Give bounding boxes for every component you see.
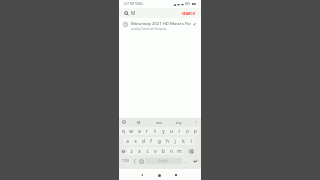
button[interactable]: English xyxy=(145,158,182,164)
staticText: x xyxy=(138,148,141,154)
button[interactable]: Motorway 2021 HD Movies Floortime... xyxy=(123,18,197,31)
button[interactable]: Back xyxy=(137,170,147,180)
button[interactable]: u xyxy=(167,127,175,135)
staticText: p xyxy=(194,128,197,134)
staticText: f xyxy=(150,138,152,144)
staticText: w xyxy=(129,128,133,134)
staticText: c xyxy=(146,148,149,154)
button[interactable]: f xyxy=(147,137,155,145)
button[interactable]: v xyxy=(151,147,159,155)
button[interactable]: k xyxy=(179,137,187,145)
button[interactable]: SEARCH xyxy=(181,10,197,17)
button[interactable]: e xyxy=(135,127,143,135)
staticText: mo xyxy=(156,120,162,125)
button[interactable]: w xyxy=(127,127,135,135)
button[interactable]: More suggestions xyxy=(194,120,198,124)
button[interactable]: c xyxy=(143,147,151,155)
button[interactable]: y xyxy=(159,127,167,135)
staticText: m xyxy=(177,148,182,154)
button[interactable]: b xyxy=(159,147,167,155)
staticText: b xyxy=(162,148,165,154)
staticText: y xyxy=(162,128,165,134)
staticText: l xyxy=(190,138,192,144)
staticText: M xyxy=(137,120,141,125)
staticText: my xyxy=(176,120,182,125)
button[interactable]: p xyxy=(191,127,199,135)
button[interactable]: . xyxy=(182,157,188,165)
staticText: k xyxy=(182,138,185,144)
button[interactable]: Home xyxy=(154,170,164,180)
staticText: 88% xyxy=(185,2,191,6)
staticText: e xyxy=(138,128,141,134)
staticText: s xyxy=(134,138,137,144)
staticText: M xyxy=(131,10,135,16)
button[interactable]: s xyxy=(131,137,139,145)
button[interactable]: j xyxy=(171,137,179,145)
staticText: r xyxy=(146,128,148,134)
staticText: i xyxy=(178,128,180,134)
staticText: a xyxy=(126,138,129,144)
button[interactable]: ?123 xyxy=(119,157,131,165)
staticText: g xyxy=(158,138,161,144)
button[interactable]: i xyxy=(175,127,183,135)
staticText: n xyxy=(170,148,173,154)
staticText: ( xyxy=(134,158,136,164)
staticText: h xyxy=(166,138,169,144)
button[interactable]: o xyxy=(183,127,191,135)
button[interactable]: a xyxy=(123,137,131,145)
button[interactable]: m xyxy=(175,147,183,155)
staticText: . xyxy=(184,158,186,164)
button[interactable]: Recent apps xyxy=(171,170,181,180)
button[interactable]: Emoji xyxy=(138,156,145,166)
button[interactable]: Insert query xyxy=(192,22,197,27)
staticText: quality Download filmywap xyxy=(131,27,167,31)
button[interactable]: x xyxy=(135,147,143,155)
button[interactable]: ( xyxy=(131,157,138,165)
button[interactable]: z xyxy=(127,147,135,155)
staticText: z xyxy=(130,148,133,154)
staticText: SEARCH xyxy=(182,11,196,16)
button[interactable]: n xyxy=(167,147,175,155)
staticText: j xyxy=(174,138,176,144)
staticText: 4:21 PM 75KB/s xyxy=(124,2,143,6)
button[interactable]: Backspace xyxy=(183,146,199,156)
button[interactable]: l xyxy=(187,137,195,145)
staticText: u xyxy=(170,128,173,134)
staticText: Motorway 2021 HD Movies Floortime... xyxy=(131,21,191,27)
button[interactable]: Search xyxy=(124,11,129,16)
button[interactable]: q xyxy=(119,127,127,135)
button[interactable]: Google xyxy=(122,120,126,124)
button[interactable]: g xyxy=(155,137,163,145)
staticText: t xyxy=(154,128,156,134)
staticText: v xyxy=(154,148,157,154)
button[interactable]: Enter xyxy=(188,156,201,166)
button[interactable]: h xyxy=(163,137,171,145)
staticText: q xyxy=(122,128,125,134)
button[interactable]: Shift xyxy=(119,146,127,156)
button[interactable]: r xyxy=(143,127,151,135)
staticText: English xyxy=(159,159,168,163)
button[interactable]: d xyxy=(139,137,147,145)
staticText: o xyxy=(186,128,189,134)
button[interactable]: t xyxy=(151,127,159,135)
staticText: d xyxy=(142,138,145,144)
staticText: ?123 xyxy=(122,159,129,163)
